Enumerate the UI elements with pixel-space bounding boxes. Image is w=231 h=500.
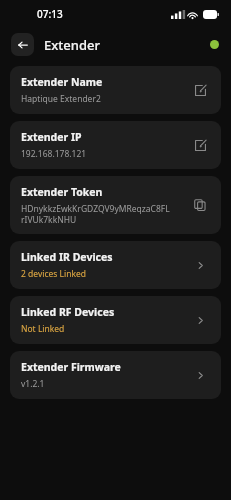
button[interactable]: Extender Firmware xyxy=(10,351,221,399)
button[interactable]: Edit extender name xyxy=(189,79,211,101)
button[interactable]: Extender Token xyxy=(10,176,221,234)
button[interactable]: Edit extender IP xyxy=(189,134,211,156)
button[interactable]: Open linked IR devices xyxy=(189,254,211,276)
staticText: Linked RF Devices xyxy=(21,305,115,319)
button[interactable]: Linked IR Devices xyxy=(10,241,221,289)
button[interactable]: Open firmware details xyxy=(189,364,211,386)
staticText: 192.168.178.121 xyxy=(21,148,87,160)
button[interactable]: Linked RF Devices xyxy=(10,296,221,344)
staticText: Extender Name xyxy=(21,75,103,89)
button[interactable]: Open linked RF devices xyxy=(189,309,211,331)
staticText: Extender Firmware xyxy=(21,360,121,374)
button[interactable]: Back xyxy=(11,33,34,56)
button[interactable]: Copy token xyxy=(189,194,211,216)
button[interactable]: Extender IP xyxy=(10,121,221,169)
staticText: 07:13 xyxy=(37,7,63,21)
staticText: Extender xyxy=(44,36,100,54)
staticText: Extender Token xyxy=(21,185,103,199)
staticText: Extender IP xyxy=(21,130,82,144)
staticText: 2 devices Linked xyxy=(21,268,87,280)
staticText: v1.2.1 xyxy=(21,378,45,390)
button[interactable]: Extender Name xyxy=(10,66,221,114)
staticText: Haptique Extender2 xyxy=(21,93,101,105)
staticText: Not Linked xyxy=(21,323,65,335)
staticText: HDnykkzEwkKrGDZQV9yMReqzaC8FLrIVUk7kkNHU xyxy=(21,203,171,225)
staticText: Linked IR Devices xyxy=(21,250,113,264)
